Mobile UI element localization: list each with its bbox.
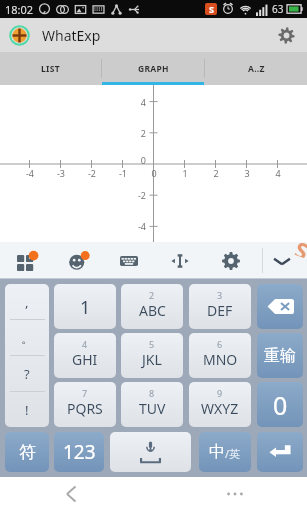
staticText: 9 bbox=[217, 387, 223, 399]
staticText: ! bbox=[25, 401, 29, 419]
button[interactable]: 7 bbox=[54, 382, 116, 427]
button[interactable]: Keyboard layout bbox=[103, 242, 154, 279]
button[interactable]: Enter bbox=[257, 432, 303, 472]
button[interactable]: 123 bbox=[54, 432, 104, 472]
button[interactable]: Recents bbox=[220, 479, 250, 509]
staticText: 4 bbox=[82, 338, 88, 350]
button[interactable]: Cursor bbox=[154, 242, 205, 279]
staticText: 123 bbox=[63, 439, 96, 465]
staticText: TUV bbox=[139, 399, 166, 418]
staticText: 3 bbox=[238, 167, 256, 179]
staticText: 3 bbox=[217, 289, 223, 301]
staticText: 5 bbox=[149, 338, 155, 350]
staticText: A..Z bbox=[248, 63, 265, 75]
staticText: 。 bbox=[21, 330, 34, 346]
staticText: 中 bbox=[209, 442, 225, 462]
button[interactable]: 0 bbox=[257, 382, 303, 427]
staticText: 符 bbox=[19, 442, 36, 463]
button[interactable]: Settings bbox=[205, 242, 256, 279]
button[interactable]: Back bbox=[56, 479, 86, 509]
staticText: GRAPH bbox=[138, 63, 169, 75]
staticText: DEF bbox=[207, 301, 233, 320]
button[interactable]: Hide keyboard bbox=[256, 242, 307, 279]
staticText: GHI bbox=[72, 350, 98, 369]
button[interactable]: Delete bbox=[257, 284, 303, 329]
staticText: -4 bbox=[21, 167, 39, 179]
button[interactable]: 1 bbox=[54, 284, 116, 329]
staticText: 8 bbox=[149, 387, 155, 399]
staticText: PQRS bbox=[67, 399, 103, 418]
button[interactable]: Space bbox=[110, 432, 191, 472]
staticText: 重输 bbox=[264, 346, 296, 366]
staticText: 6 bbox=[217, 338, 223, 350]
button[interactable]: 2 bbox=[121, 284, 183, 329]
staticText: -1 bbox=[114, 167, 132, 179]
button[interactable]: Emoji bbox=[52, 242, 103, 279]
button[interactable]: GRAPH bbox=[102, 52, 204, 85]
button[interactable]: 符 bbox=[5, 432, 49, 472]
button[interactable]: 重输 bbox=[257, 333, 303, 378]
staticText: /英 bbox=[225, 446, 241, 461]
staticText: WXYZ bbox=[201, 399, 239, 418]
staticText: -2 bbox=[128, 189, 146, 201]
staticText: -3 bbox=[52, 167, 70, 179]
staticText: 18:02 bbox=[5, 2, 34, 17]
staticText: S bbox=[209, 3, 214, 15]
staticText: 63 bbox=[272, 2, 284, 16]
button[interactable]: 4 bbox=[54, 333, 116, 378]
button[interactable]: 5 bbox=[121, 333, 183, 378]
staticText: , bbox=[25, 293, 29, 311]
button[interactable]: Settings bbox=[269, 18, 303, 52]
button[interactable]: 中 bbox=[199, 432, 251, 472]
staticText: S bbox=[294, 234, 307, 259]
button[interactable]: 3 bbox=[189, 284, 251, 329]
staticText: 0 bbox=[273, 388, 288, 422]
staticText: 4 bbox=[269, 167, 287, 179]
staticText: ? bbox=[24, 365, 30, 383]
staticText: 4 bbox=[128, 96, 146, 108]
staticText: JKL bbox=[142, 350, 162, 369]
button[interactable]: 9 bbox=[189, 382, 251, 427]
button[interactable]: , bbox=[5, 284, 49, 427]
staticText: 2 bbox=[128, 127, 146, 139]
staticText: -2 bbox=[83, 167, 101, 179]
staticText: 2 bbox=[207, 167, 225, 179]
staticText: 1 bbox=[80, 295, 91, 320]
staticText: 0 bbox=[128, 154, 146, 166]
staticText: 0 bbox=[145, 167, 163, 179]
button[interactable]: 8 bbox=[121, 382, 183, 427]
button[interactable]: 6 bbox=[189, 333, 251, 378]
button[interactable]: A..Z bbox=[205, 52, 307, 85]
staticText: 7 bbox=[82, 387, 88, 399]
staticText: -4 bbox=[128, 220, 146, 232]
staticText: 1 bbox=[176, 167, 194, 179]
button[interactable]: Apps bbox=[0, 242, 52, 279]
staticText: ABC bbox=[139, 301, 166, 320]
staticText: MNO bbox=[203, 350, 238, 369]
button[interactable]: LIST bbox=[0, 52, 101, 85]
staticText: WhatExp bbox=[42, 26, 101, 45]
staticText: 2 bbox=[149, 289, 155, 301]
staticText: LIST bbox=[41, 63, 60, 75]
